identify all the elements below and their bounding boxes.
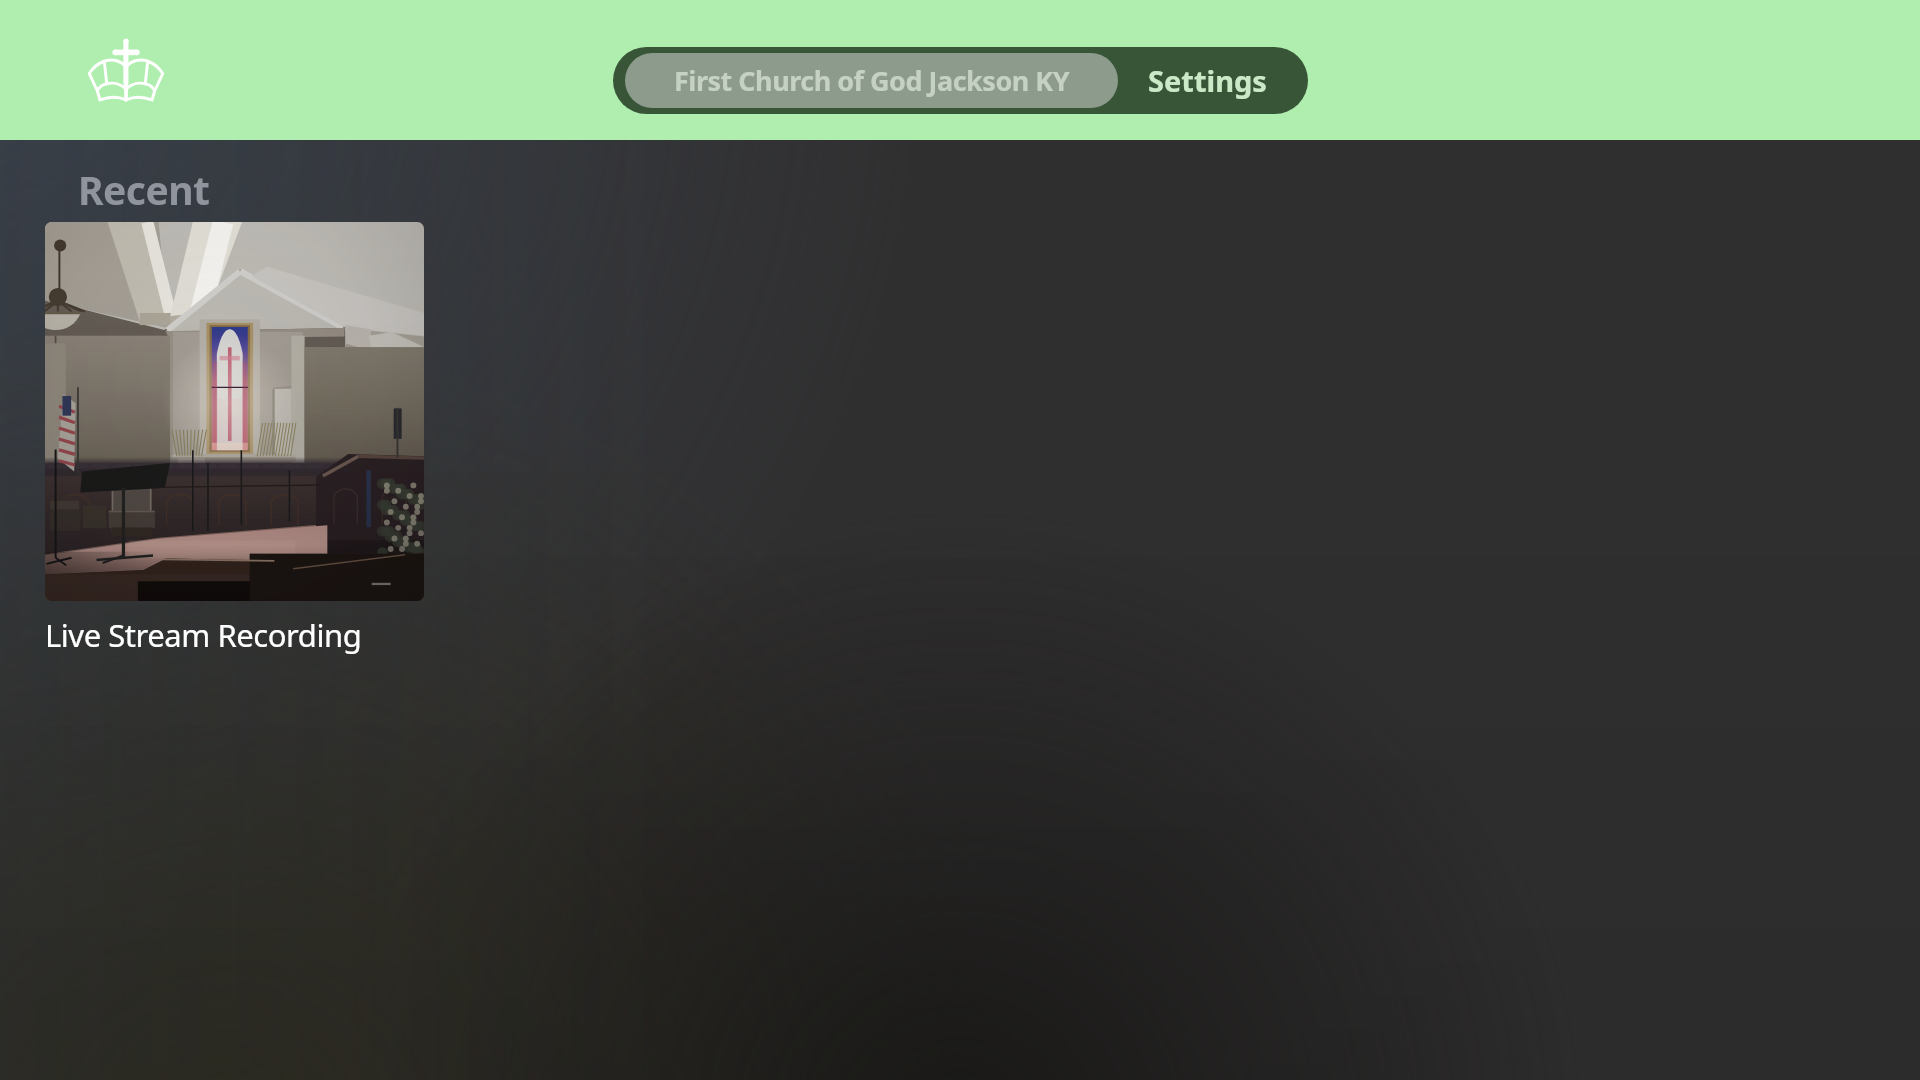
staticText: Live Stream Recording bbox=[45, 614, 362, 656]
staticText: Recent bbox=[78, 163, 210, 216]
button[interactable]: Home bbox=[84, 34, 168, 118]
staticText: Settings bbox=[1148, 61, 1267, 100]
button[interactable]: Live Stream Recording bbox=[45, 222, 424, 656]
button[interactable]: First Church of God Jackson KY bbox=[625, 53, 1118, 108]
button[interactable]: Settings bbox=[1118, 53, 1296, 108]
staticText: First Church of God Jackson KY bbox=[674, 62, 1070, 99]
